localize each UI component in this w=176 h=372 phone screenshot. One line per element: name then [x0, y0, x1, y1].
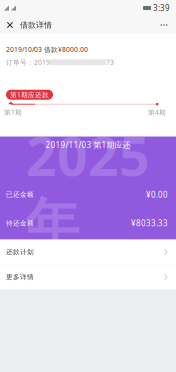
staticText: 73: [106, 58, 114, 67]
staticText: 待还金额: [6, 219, 34, 227]
staticText: 还款计划: [6, 248, 34, 256]
staticText: 借款详情: [20, 20, 52, 30]
staticText: ¥0.00: [146, 189, 168, 200]
staticText: 第1期: [4, 108, 22, 117]
staticText: ¥8033.33: [131, 218, 168, 228]
staticText: 2025年: [26, 120, 150, 256]
staticText: 已还金额: [6, 190, 34, 199]
staticText: 第4期: [148, 108, 166, 117]
staticText: 2019/10/03 借款¥8000.00: [6, 45, 88, 54]
staticText: 3:39: [153, 3, 170, 13]
button[interactable]: 更多详情: [0, 265, 176, 290]
staticText: 订单号：2019: [6, 58, 50, 67]
staticText: 2019/11/03 第1期应还: [45, 140, 130, 150]
staticText: 第1期应还款: [10, 90, 49, 99]
button[interactable]: 更多: [156, 16, 172, 34]
button[interactable]: 关闭: [2, 16, 18, 34]
button[interactable]: 还款计划: [0, 240, 176, 265]
staticText: 更多详情: [6, 273, 34, 281]
